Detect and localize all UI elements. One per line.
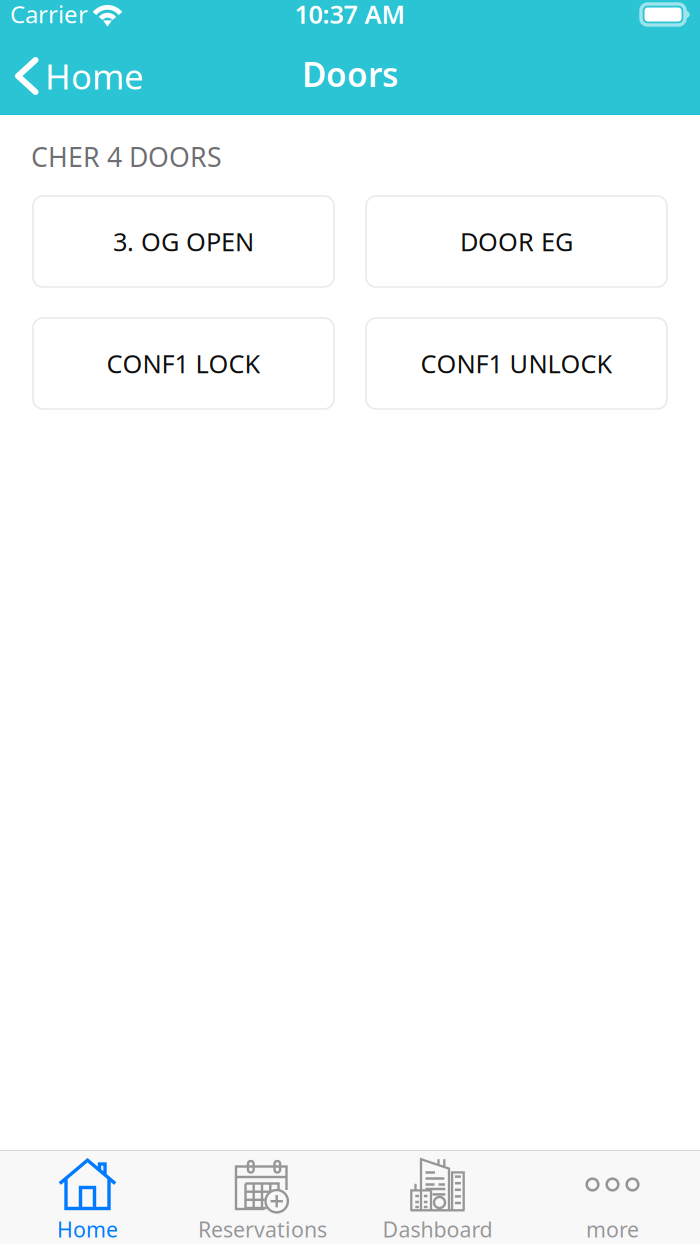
staticText: Reservations: [198, 1215, 327, 1243]
staticText: CHER 4 DOORS: [31, 139, 222, 174]
staticText: Home: [45, 53, 144, 99]
button[interactable]: Home: [0, 1151, 175, 1244]
button[interactable]: Dashboard: [350, 1151, 525, 1244]
button[interactable]: CONF1 UNLOCK: [366, 318, 667, 409]
staticText: Carrier: [10, 0, 88, 30]
staticText: CONF1 LOCK: [106, 347, 260, 380]
staticText: DOOR EG: [460, 225, 573, 258]
button[interactable]: more: [525, 1151, 700, 1244]
staticText: 3. OG OPEN: [113, 225, 254, 258]
staticText: more: [586, 1215, 639, 1243]
staticText: Home: [57, 1215, 118, 1243]
staticText: Doors: [302, 52, 398, 96]
staticText: CONF1 UNLOCK: [420, 347, 612, 380]
button[interactable]: 3. OG OPEN: [33, 196, 334, 287]
staticText: Dashboard: [382, 1215, 492, 1243]
button[interactable]: DOOR EG: [366, 196, 667, 287]
staticText: 10:37 AM: [294, 0, 405, 31]
button[interactable]: Reservations: [175, 1151, 350, 1244]
button[interactable]: CONF1 LOCK: [33, 318, 334, 409]
button[interactable]: Home: [0, 46, 158, 106]
